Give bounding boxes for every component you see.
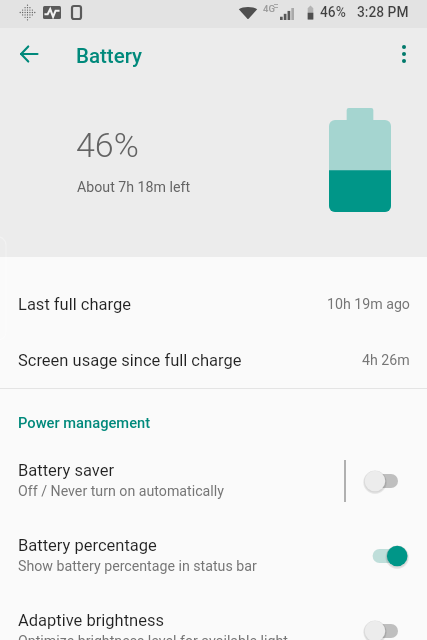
button[interactable]: More options xyxy=(384,34,424,74)
staticText: Screen usage since full charge xyxy=(18,351,242,370)
button[interactable]: Screen usage since full charge xyxy=(0,332,427,388)
button[interactable]: Battery percentage xyxy=(0,518,427,593)
staticText: 4G xyxy=(263,3,275,14)
staticText: 4h 26m xyxy=(362,352,410,369)
staticText: 46% xyxy=(76,125,139,165)
staticText: Power management xyxy=(18,414,151,431)
button[interactable]: Navigate up xyxy=(9,34,49,74)
button[interactable]: Battery saver switch xyxy=(364,443,427,518)
staticText: 46% xyxy=(320,4,346,20)
staticText: Optimize brightness level for available … xyxy=(18,633,288,640)
button[interactable]: Adaptive brightness switch xyxy=(364,593,427,640)
staticText: Battery saver xyxy=(18,461,115,480)
staticText: Battery percentage xyxy=(18,536,157,555)
staticText: Adaptive brightness xyxy=(18,611,164,630)
button[interactable]: Adaptive brightness xyxy=(0,593,427,640)
button[interactable]: Battery saver xyxy=(0,443,427,518)
button[interactable]: Last full charge xyxy=(0,276,427,332)
staticText: 3:28 PM xyxy=(357,4,409,20)
staticText: 10h 19m ago xyxy=(327,296,410,313)
staticText: About 7h 18m left xyxy=(77,179,191,196)
staticText: Last full charge xyxy=(18,295,131,314)
button[interactable]: Battery percentage switch xyxy=(364,518,427,593)
staticText: Battery xyxy=(76,44,143,68)
staticText: Show battery percentage in status bar xyxy=(18,558,257,575)
staticText: Off / Never turn on automatically xyxy=(18,483,224,500)
